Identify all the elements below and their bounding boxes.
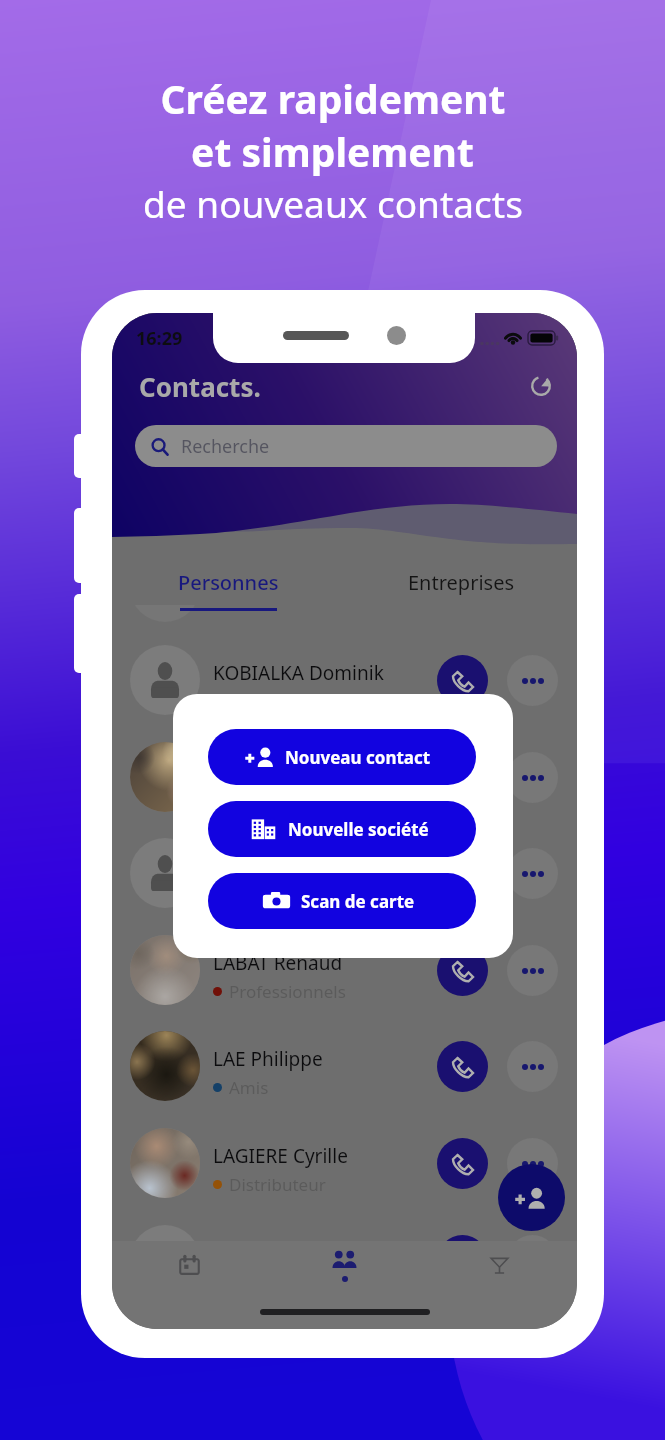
button[interactable]: Contacts [267, 1245, 422, 1285]
staticText: Distributeur [229, 1173, 326, 1196]
staticText: Amis [229, 1076, 269, 1099]
staticText: Contacts. [139, 369, 261, 404]
staticText: 16:29 [136, 326, 183, 351]
staticText: LABAN Céline [213, 757, 334, 783]
button[interactable]: Nouveau contact [208, 729, 476, 785]
button[interactable]: Refresh [525, 370, 557, 402]
staticText: Scan de carte [301, 890, 415, 913]
staticText: LAE Philippe [213, 1046, 323, 1072]
button[interactable]: LAE Philippe [112, 1018, 577, 1114]
button[interactable]: More options [507, 1138, 558, 1189]
button[interactable]: LAGIERE Cyrille [112, 1115, 577, 1211]
button[interactable]: Scan de carte [208, 873, 476, 929]
button[interactable]: Call [437, 848, 488, 899]
staticText: LABARTHE Marc [213, 853, 357, 879]
button[interactable]: Call [437, 1041, 488, 1092]
staticText: Nouvelle société [288, 818, 429, 841]
staticText: KOBIALKA Dominik [213, 660, 384, 686]
button[interactable]: Agenda [112, 1245, 267, 1285]
staticText: LAGRANGE Paul [213, 1240, 356, 1266]
button[interactable]: Recherche [135, 425, 557, 467]
button[interactable]: Call [437, 752, 488, 803]
button[interactable]: Add contact [498, 1164, 565, 1231]
button[interactable]: Nouvelle société [208, 801, 476, 857]
button[interactable]: Call [437, 945, 488, 996]
button[interactable]: More options [507, 848, 558, 899]
staticText: Créez rapidement [160, 72, 506, 125]
button[interactable]: KOBIALKA Dominik [112, 632, 577, 728]
staticText: de nouveaux contacts [143, 178, 523, 228]
staticText: Nouveau contact [285, 746, 431, 769]
button[interactable]: Entreprises [344, 563, 577, 615]
button[interactable]: Call [437, 1235, 488, 1286]
button[interactable]: Call [437, 1138, 488, 1189]
staticText: Professionnels [229, 980, 346, 1003]
staticText: Amis [229, 787, 269, 810]
button[interactable]: More options [507, 655, 558, 706]
staticText: Entreprises [408, 569, 514, 596]
button[interactable]: More options [507, 1041, 558, 1092]
button[interactable]: Events [422, 1245, 577, 1285]
button[interactable]: LABAT Renaud [112, 922, 577, 1018]
staticText: et simplement [191, 125, 474, 178]
button[interactable]: Personnes [112, 563, 344, 615]
button[interactable]: More options [507, 752, 558, 803]
staticText: LABAT Renaud [213, 950, 343, 976]
staticText: Personnes [178, 569, 279, 596]
staticText: Particuliers [229, 883, 319, 906]
staticText: Château [229, 690, 296, 713]
staticText: LAGIERE Cyrille [213, 1143, 348, 1169]
button[interactable]: LABAN Céline [112, 729, 577, 825]
button[interactable]: Call [437, 655, 488, 706]
button[interactable]: LAGRANGE Paul [112, 1212, 577, 1308]
button[interactable]: More options [507, 945, 558, 996]
button[interactable]: LABARTHE Marc [112, 825, 577, 921]
staticText: Recherche [181, 434, 270, 459]
